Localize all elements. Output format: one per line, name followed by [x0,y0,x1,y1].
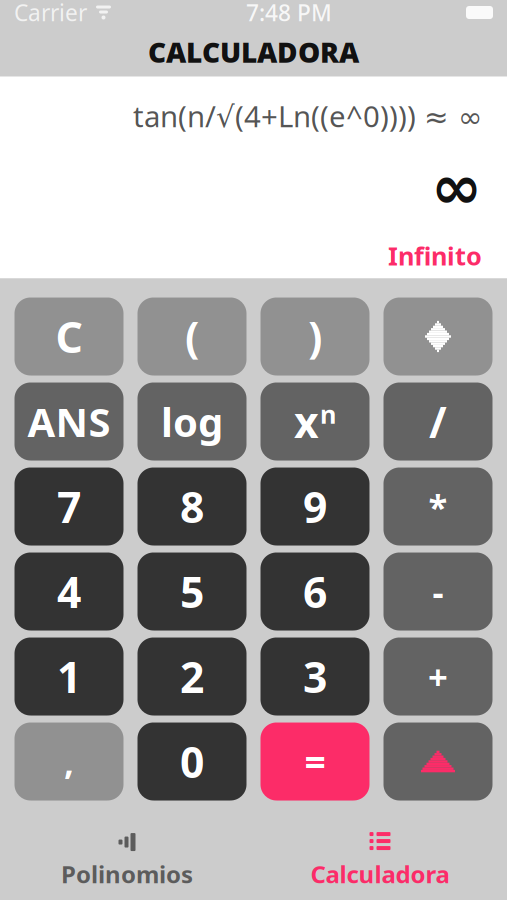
staticText: C [55,308,82,365]
button[interactable]: x to the power of n [260,382,369,460]
button[interactable]: ( [137,297,246,375]
button[interactable]: Expand [383,722,492,800]
staticText: 7:48 PM [246,0,332,27]
button[interactable]: * [383,467,492,545]
button[interactable]: ) [260,297,369,375]
button[interactable]: / [383,382,492,460]
button[interactable]: 6 [260,552,369,630]
button[interactable]: 7 [14,467,123,545]
staticText: / [429,393,447,450]
staticText: + [428,653,448,699]
staticText: 8 [180,478,204,535]
button[interactable]: log [137,382,246,460]
staticText: 3 [303,648,327,705]
button[interactable]: 4 [14,552,123,630]
button[interactable]: 9 [260,467,369,545]
button[interactable]: + [383,637,492,715]
staticText: CALCULADORA [148,33,359,71]
staticText: x [294,393,319,450]
staticText: 4 [57,563,81,620]
staticText: - [432,568,443,614]
staticText: ∞ [431,152,482,222]
staticText: 9 [303,478,327,535]
button[interactable]: ANS [14,382,123,460]
staticText: ANS [27,395,110,448]
staticText: ( [185,308,199,365]
staticText: Infinito [388,239,482,272]
button[interactable]: 0 [137,722,246,800]
button[interactable]: = [260,722,369,800]
button[interactable]: 2 [137,637,246,715]
staticText: = [304,737,325,786]
button[interactable]: C [14,297,123,375]
button[interactable]: 1 [14,637,123,715]
staticText: tan(n/√(4+Ln((e^0)))) ≈ ∞ [133,96,482,135]
staticText: * [428,483,447,529]
staticText: 0 [180,733,204,790]
staticText: 2 [180,648,204,705]
button[interactable]: Calculadora [253,818,506,900]
button[interactable]: Polinomios [0,818,253,900]
staticText: 7 [57,478,81,535]
staticText: Polinomios [61,858,193,890]
button[interactable]: , [14,722,123,800]
staticText: log [161,395,223,448]
button[interactable]: 8 [137,467,246,545]
staticText: 1 [57,648,81,705]
staticText: n [320,397,336,431]
button[interactable]: 3 [260,637,369,715]
button[interactable]: - [383,552,492,630]
button[interactable]: 5 [137,552,246,630]
staticText: Carrier [14,0,87,27]
button[interactable]: Delete [383,297,492,375]
staticText: ) [308,308,322,365]
staticText: 6 [303,563,327,620]
staticText: Calculadora [310,858,449,890]
staticText: 5 [180,563,204,620]
staticText: , [64,738,74,784]
